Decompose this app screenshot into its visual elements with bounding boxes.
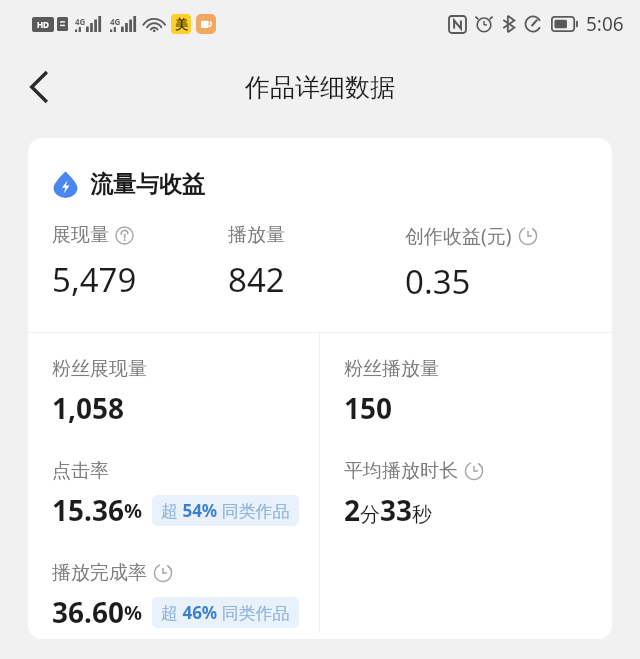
staticText: 150 xyxy=(344,389,393,427)
staticText: 5:06 xyxy=(586,11,624,37)
staticText: 粉丝播放量 xyxy=(344,357,439,381)
button[interactable]: 粉丝播放量 xyxy=(320,333,612,435)
staticText: 展现量 xyxy=(52,223,109,247)
button[interactable]: 播放完成率 xyxy=(28,537,319,639)
button[interactable]: 平均播放时长 xyxy=(320,435,612,537)
staticText: HD xyxy=(37,19,49,30)
staticText: 流量与收益 xyxy=(90,170,205,199)
staticText: 4G xyxy=(110,16,121,27)
button[interactable]: 超 46% 同类作品 xyxy=(152,597,299,628)
button[interactable]: 播放量 xyxy=(228,223,405,302)
staticText: 4G xyxy=(75,16,86,27)
staticText: % xyxy=(124,497,143,524)
staticText: 1,058 xyxy=(52,389,125,427)
staticText: 2分33秒 xyxy=(344,491,433,529)
staticText: 创作收益(元) xyxy=(405,223,512,249)
button[interactable]: Back xyxy=(10,59,66,115)
staticText: 平均播放时长 xyxy=(344,459,458,483)
staticText: 点击率 xyxy=(52,459,109,483)
button[interactable]: 展现量 xyxy=(52,223,228,302)
staticText: 5,479 xyxy=(52,257,137,302)
button[interactable]: 点击率 xyxy=(28,435,319,537)
staticText: 842 xyxy=(228,257,285,302)
button[interactable]: 超 54% 同类作品 xyxy=(152,495,299,526)
button[interactable]: 流量与收益 xyxy=(52,170,205,199)
staticText: 播放完成率 xyxy=(52,561,147,585)
staticText: 作品详细数据 xyxy=(245,72,395,103)
staticText: 播放量 xyxy=(228,223,285,247)
staticText: 0.35 xyxy=(405,259,471,304)
staticText: 超 54% 同类作品 xyxy=(161,499,290,522)
button[interactable]: 创作收益(元) xyxy=(405,223,596,304)
staticText: 15.36 xyxy=(52,491,124,529)
staticText: 粉丝展现量 xyxy=(52,357,147,381)
staticText: 超 46% 同类作品 xyxy=(161,601,290,624)
staticText: 美 xyxy=(175,16,188,32)
button[interactable]: 粉丝展现量 xyxy=(28,333,319,435)
staticText: % xyxy=(124,599,143,626)
staticText: 36.60 xyxy=(52,593,124,631)
